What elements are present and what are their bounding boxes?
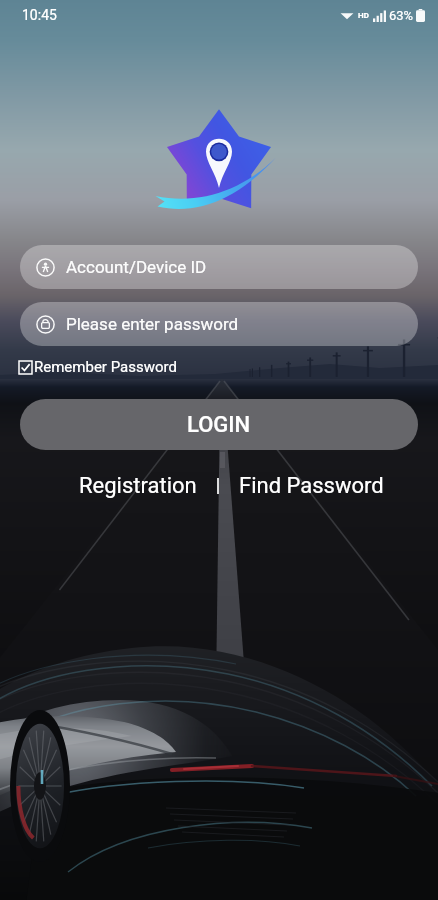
staticText: 10:45 [22, 7, 57, 23]
button[interactable]: Find Password [229, 468, 394, 504]
staticText: HD [358, 11, 369, 20]
button[interactable]: Please enter password [20, 302, 418, 346]
staticText: Registration [79, 473, 197, 499]
staticText: Find Password [239, 473, 384, 499]
staticText: LOGIN [187, 412, 251, 438]
button[interactable]: Account/Device ID [20, 245, 418, 289]
button[interactable]: LOGIN [20, 399, 418, 450]
staticText: Account/Device ID [66, 257, 207, 277]
staticText: Remember Password [34, 358, 177, 376]
staticText: 63% [389, 8, 414, 23]
staticText: Please enter password [66, 314, 239, 334]
button[interactable]: Remember Password [19, 356, 177, 378]
button[interactable]: Registration [69, 468, 207, 504]
